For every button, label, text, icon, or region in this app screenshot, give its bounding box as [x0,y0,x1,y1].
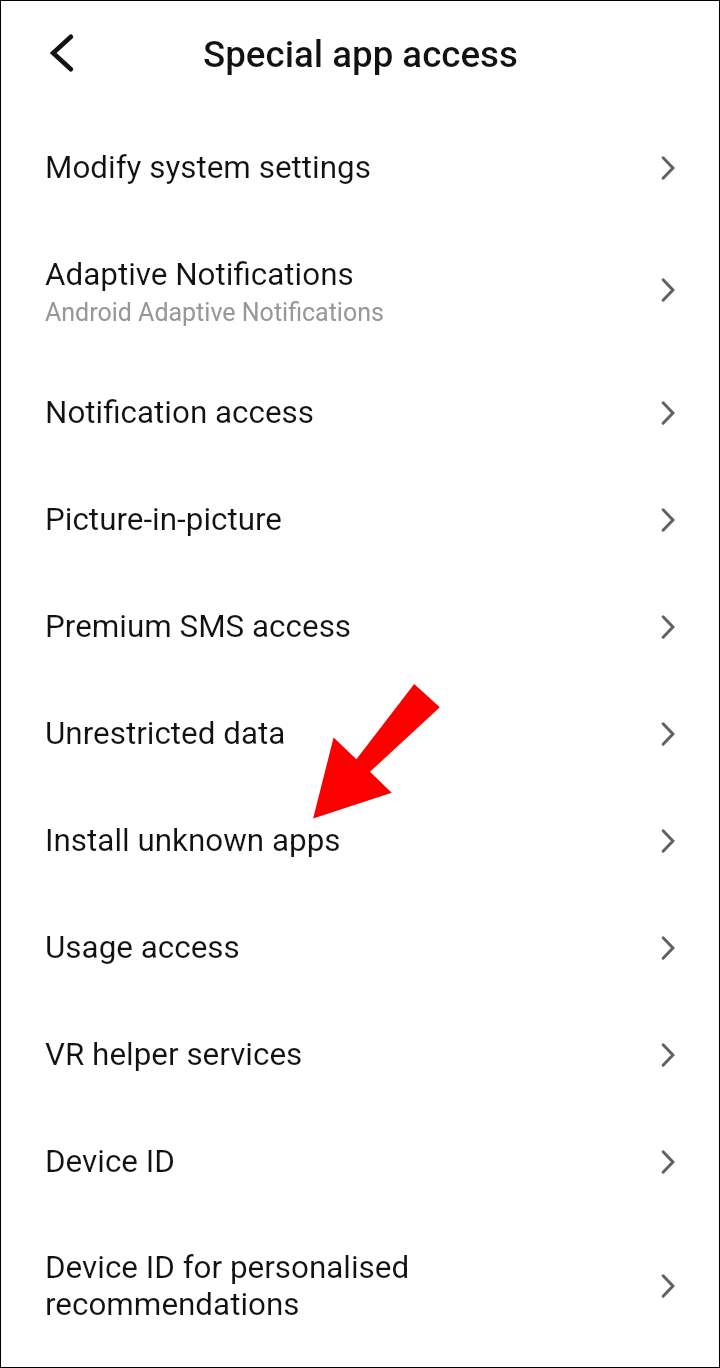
staticText: Android Adaptive Notifications [45,298,384,327]
staticText: Modify system settings [45,149,371,186]
button[interactable]: Usage access [1,894,719,1001]
staticText: Usage access [45,929,240,966]
staticText: VR helper services [45,1036,303,1073]
button[interactable]: Device ID for personalised recommendatio… [1,1215,719,1356]
staticText: Special app access [203,33,518,76]
staticText: Premium SMS access [45,608,352,645]
button[interactable]: Adaptive Notifications [1,221,719,359]
staticText: Notification access [45,394,315,431]
button[interactable]: Install unknown apps [1,787,719,894]
button[interactable]: Notification access [1,359,719,466]
staticText: Device ID for personalised recommendatio… [45,1249,410,1323]
button[interactable]: Device ID [1,1108,719,1215]
staticText: Unrestricted data [45,715,286,752]
staticText: Picture-in-picture [45,501,283,538]
staticText: Install unknown apps [45,822,341,859]
staticText: Device ID [45,1143,175,1180]
button[interactable]: Back [32,23,92,83]
staticText: Adaptive Notifications [45,256,354,293]
button[interactable]: Modify system settings [1,114,719,221]
button[interactable]: Picture-in-picture [1,466,719,573]
button[interactable]: Premium SMS access [1,573,719,680]
button[interactable]: VR helper services [1,1001,719,1108]
button[interactable]: Unrestricted data [1,680,719,787]
